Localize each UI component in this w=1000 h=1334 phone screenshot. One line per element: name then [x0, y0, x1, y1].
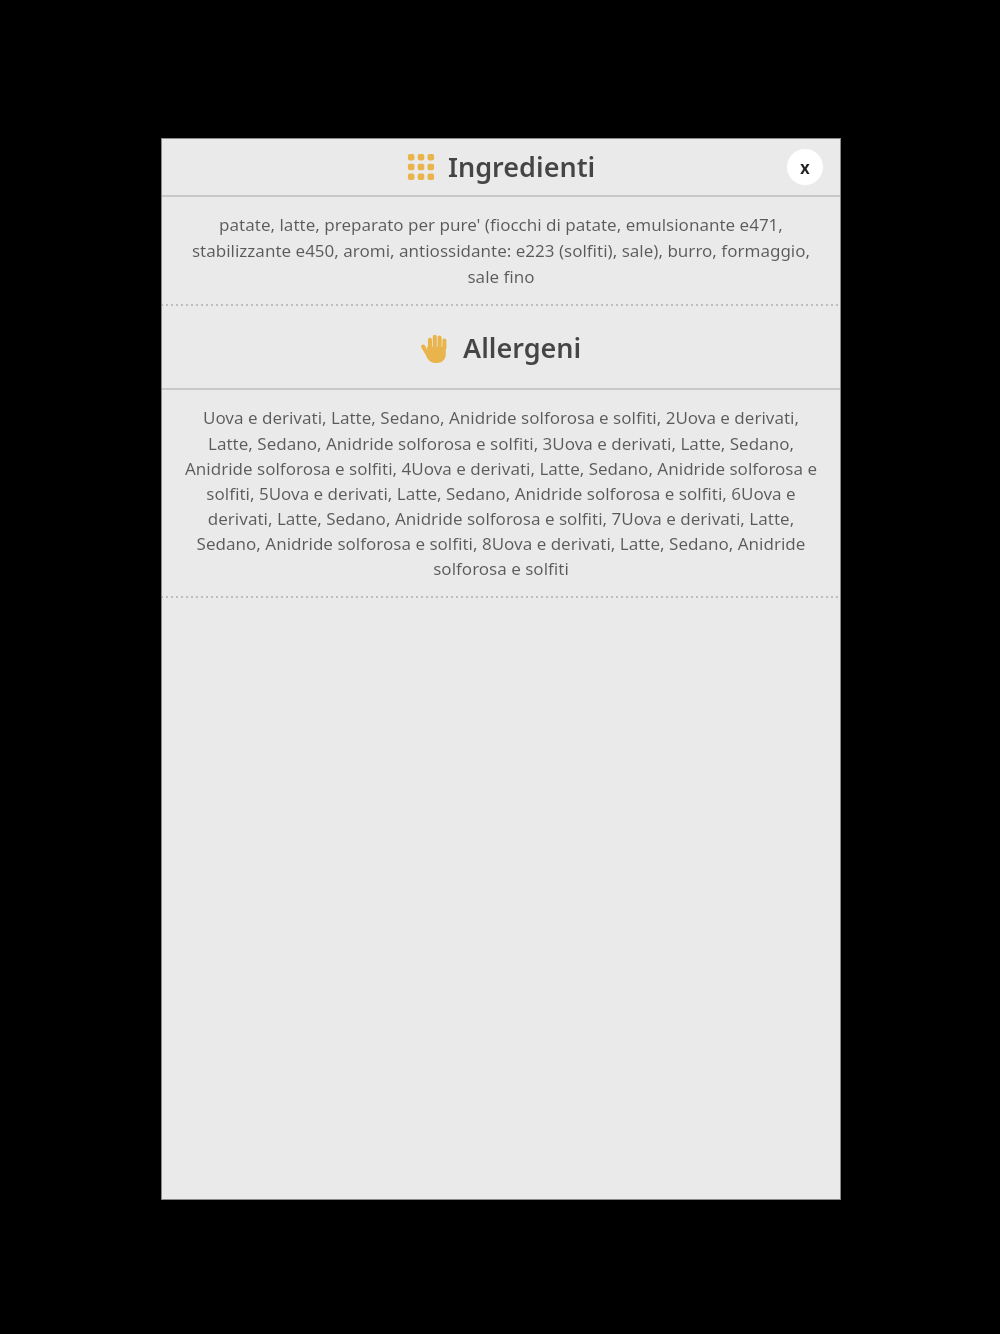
- staticText: patate, latte, preparato per pure' (fioc…: [181, 213, 821, 288]
- staticText: Uova e derivati, Latte, Sedano, Anidride…: [181, 406, 821, 580]
- button[interactable]: Chiudi: [787, 149, 823, 185]
- staticText: x: [800, 156, 810, 179]
- staticText: Allergeni: [463, 329, 582, 366]
- staticText: Ingredienti: [448, 148, 596, 185]
